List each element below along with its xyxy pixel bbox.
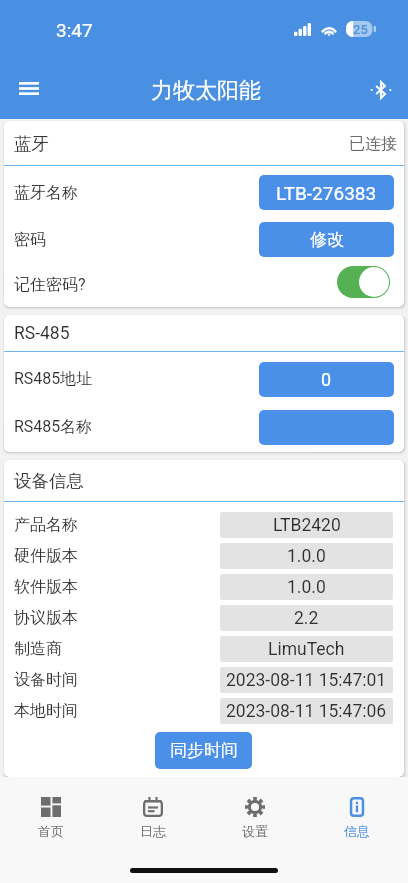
staticText: 本地时间 — [14, 701, 78, 721]
button[interactable]: 首页 — [0, 777, 102, 839]
staticText: 修改 — [310, 229, 344, 250]
staticText: 记住密码? — [14, 275, 86, 295]
staticText: 密码 — [14, 230, 46, 250]
staticText: 设置 — [242, 823, 268, 839]
button[interactable]: Remember password — [337, 266, 390, 298]
staticText: LimuTech — [268, 639, 345, 660]
button[interactable]: 设置 — [204, 777, 306, 839]
staticText: LTB2420 — [273, 515, 341, 536]
staticText: 日志 — [140, 823, 166, 839]
button[interactable]: LTB-276383 — [259, 175, 394, 210]
staticText: 0 — [321, 369, 332, 390]
staticText: 2023-08-11 15:47:01 — [226, 670, 387, 691]
staticText: 力牧太阳能 — [151, 77, 261, 105]
staticText: 2023-08-11 15:47:06 — [226, 701, 387, 722]
staticText: LTB-276383 — [276, 182, 377, 204]
staticText: 1.0.0 — [287, 577, 326, 598]
staticText: 首页 — [38, 823, 64, 839]
staticText: 信息 — [344, 823, 370, 839]
button[interactable]: Bluetooth — [359, 68, 403, 112]
staticText: 已连接 — [349, 134, 397, 154]
button[interactable] — [259, 410, 394, 445]
button[interactable]: 修改 — [259, 222, 394, 257]
staticText: 协议版本 — [14, 608, 78, 628]
staticText: 25 — [353, 22, 368, 37]
button[interactable]: 0 — [259, 362, 394, 397]
button[interactable]: 日志 — [102, 777, 204, 839]
button[interactable]: 同步时间 — [155, 732, 252, 769]
staticText: 3:47 — [56, 19, 93, 41]
staticText: 1.0.0 — [287, 546, 326, 567]
button[interactable]: 信息 — [306, 777, 408, 839]
staticText: 设备信息 — [14, 470, 84, 492]
staticText: 软件版本 — [14, 577, 78, 597]
staticText: 同步时间 — [170, 740, 238, 761]
staticText: 蓝牙 — [14, 133, 49, 155]
staticText: 蓝牙名称 — [14, 183, 78, 203]
staticText: 制造商 — [14, 639, 62, 659]
staticText: 硬件版本 — [14, 546, 78, 566]
staticText: 设备时间 — [14, 670, 78, 690]
staticText: RS485名称 — [14, 417, 93, 437]
staticText: RS-485 — [14, 323, 70, 344]
staticText: RS485地址 — [14, 369, 93, 389]
staticText: 产品名称 — [14, 515, 78, 535]
button[interactable]: Menu — [5, 64, 53, 112]
staticText: 2.2 — [294, 608, 319, 629]
